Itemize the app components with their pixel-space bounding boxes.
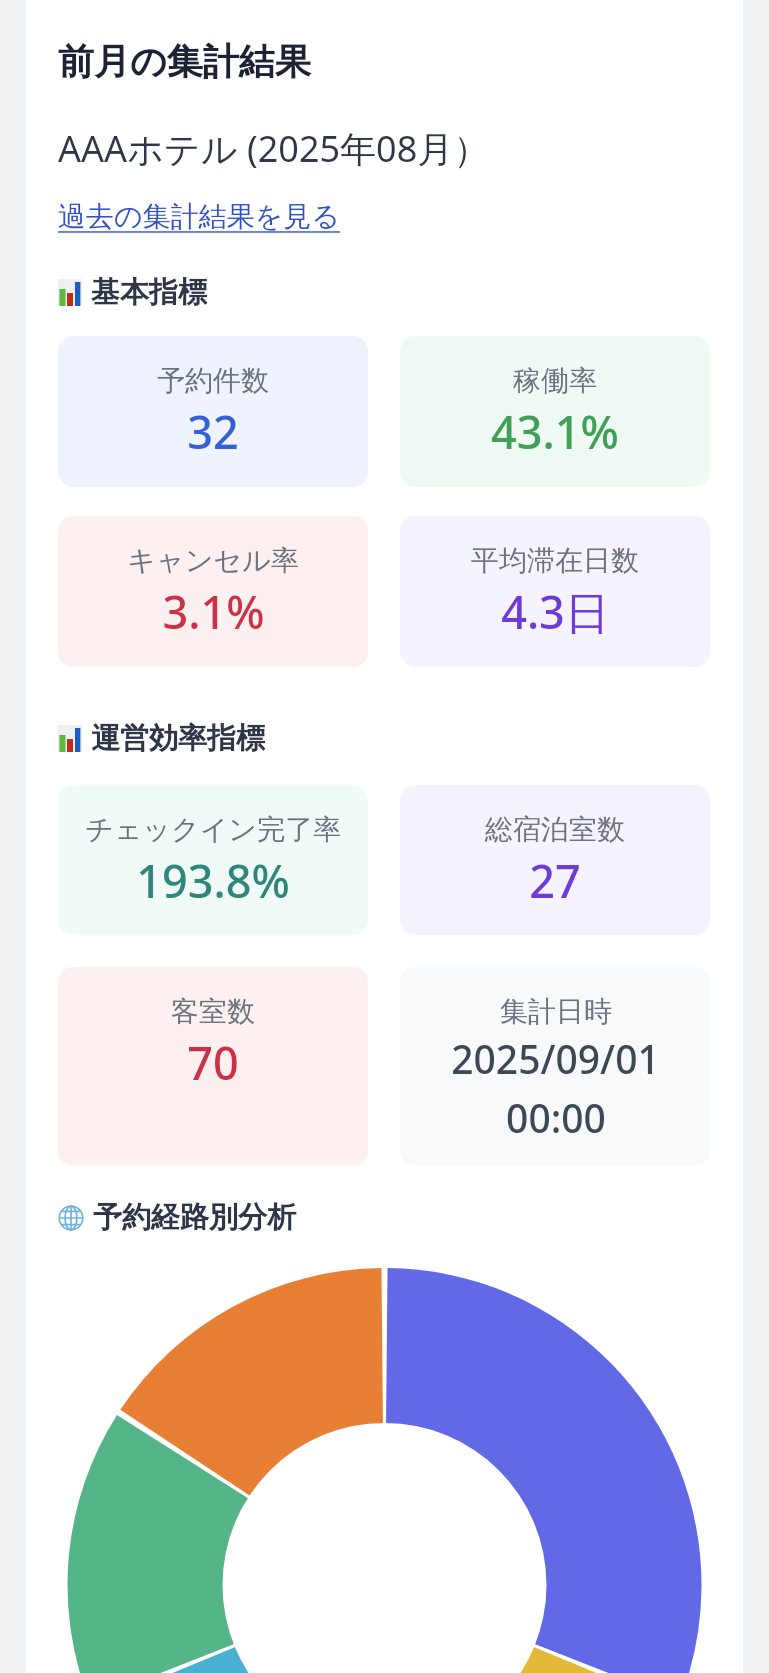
- staticText: 平均滞在日数: [471, 543, 639, 578]
- staticText: 27: [529, 850, 581, 911]
- staticText: 32: [187, 401, 239, 462]
- staticText: 3.1%: [162, 581, 265, 642]
- staticText: 客室数: [171, 994, 255, 1029]
- staticText: 集計日時: [500, 994, 612, 1029]
- other: Bar chart: [58, 279, 82, 306]
- staticText: チェックイン完了率: [85, 812, 341, 847]
- button[interactable]: 客室数: [58, 967, 368, 1166]
- staticText: 00:00: [506, 1091, 606, 1144]
- staticText: 43.1%: [491, 401, 619, 462]
- other: Globe: [58, 1205, 84, 1231]
- other: 予約経路別分析 ドーナツグラフ: [26, 0, 743, 1673]
- staticText: 総宿泊室数: [485, 812, 625, 847]
- staticText: 予約経路別分析: [93, 1199, 296, 1236]
- button[interactable]: 過去の集計結果を見る: [58, 199, 340, 234]
- staticText: 前月の集計結果: [58, 39, 311, 84]
- staticText: キャンセル率: [127, 543, 299, 578]
- staticText: 稼働率: [513, 363, 597, 398]
- button[interactable]: 平均滞在日数: [400, 516, 710, 667]
- staticText: 予約件数: [157, 363, 269, 398]
- button[interactable]: 稼働率: [400, 336, 710, 487]
- staticText: 4.3日: [501, 581, 610, 642]
- staticText: 2025/09/01: [451, 1032, 660, 1085]
- button[interactable]: 集計日時: [400, 967, 710, 1166]
- other: Bar chart: [58, 725, 82, 752]
- staticText: 193.8%: [136, 850, 290, 911]
- staticText: 過去の集計結果を見る: [58, 199, 340, 234]
- staticText: 基本指標: [91, 274, 207, 311]
- button[interactable]: キャンセル率: [58, 516, 368, 667]
- staticText: AAAホテル (2025年08月）: [58, 124, 490, 173]
- staticText: 70: [187, 1032, 239, 1093]
- button[interactable]: 予約件数: [58, 336, 368, 487]
- staticText: 運営効率指標: [91, 720, 265, 757]
- button[interactable]: チェックイン完了率: [58, 785, 368, 935]
- button[interactable]: 総宿泊室数: [400, 785, 710, 935]
